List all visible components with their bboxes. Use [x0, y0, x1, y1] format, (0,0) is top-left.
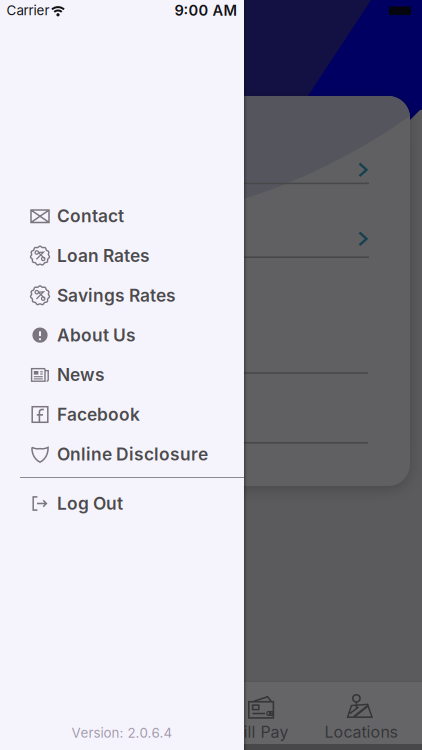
staticText: Bill Pay	[233, 723, 288, 741]
button[interactable]: Facebook	[0, 394, 244, 434]
button[interactable]: About Us	[0, 315, 244, 355]
button[interactable]: Savings Rates	[0, 275, 244, 315]
staticText: Contact	[57, 206, 124, 226]
button[interactable]: Locations	[311, 688, 411, 746]
staticText: News	[57, 365, 105, 385]
staticText: Version: 2.0.6.4	[71, 725, 172, 741]
staticText: Online Disclosure	[57, 444, 208, 464]
button[interactable]: Log Out	[0, 483, 244, 523]
button[interactable]: Bill Pay	[211, 688, 311, 746]
staticText: Carrier	[6, 3, 49, 18]
button[interactable]: News	[0, 355, 244, 395]
staticText: Savings Rates	[57, 285, 176, 306]
staticText: About Us	[57, 325, 136, 345]
staticText: 9:00 AM	[174, 2, 237, 19]
button[interactable]: Contact	[0, 196, 244, 236]
staticText: Loan Rates	[57, 245, 150, 266]
button[interactable]: Online Disclosure	[0, 434, 244, 474]
staticText: Log Out	[57, 493, 123, 514]
staticText: Facebook	[57, 404, 140, 425]
button[interactable]: Loan Rates	[0, 236, 244, 276]
staticText: Locations	[324, 723, 397, 741]
